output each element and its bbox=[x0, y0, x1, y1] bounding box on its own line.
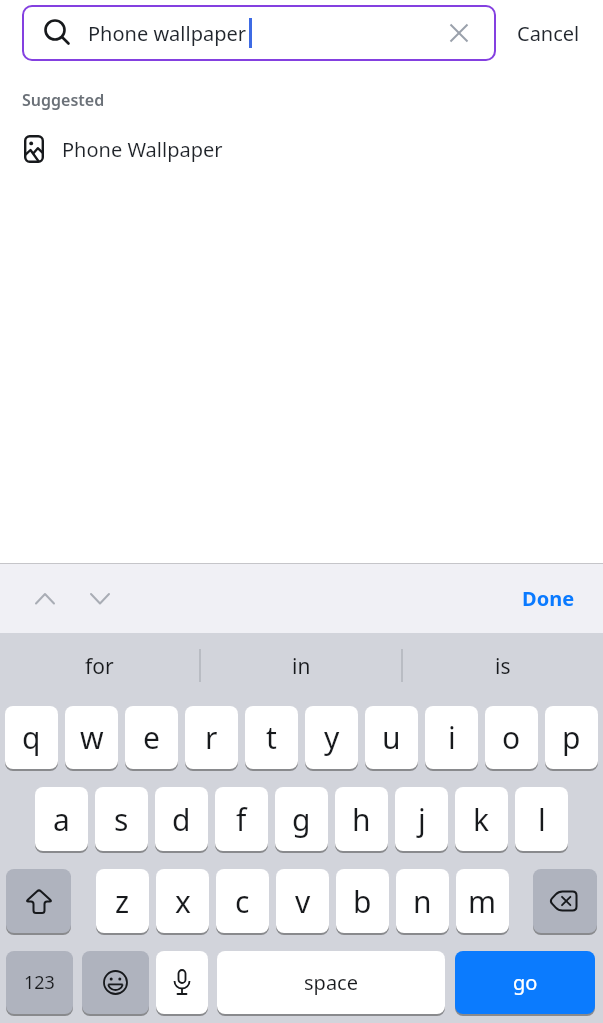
button[interactable]: u bbox=[365, 706, 418, 769]
staticText: Cancel bbox=[517, 20, 580, 47]
button[interactable]: k bbox=[455, 787, 508, 851]
button[interactable]: h bbox=[335, 787, 388, 851]
button[interactable]: in bbox=[201, 638, 401, 694]
staticText: x bbox=[175, 881, 191, 922]
staticText: f bbox=[236, 799, 247, 840]
button[interactable]: x bbox=[156, 869, 209, 933]
staticText: c bbox=[235, 881, 250, 922]
staticText: h bbox=[352, 799, 371, 840]
button[interactable]: Phone Wallpaper bbox=[24, 133, 603, 165]
staticText: in bbox=[292, 652, 311, 681]
button[interactable]: j bbox=[395, 787, 448, 851]
staticText: m bbox=[468, 881, 497, 922]
staticText: d bbox=[172, 799, 191, 840]
button[interactable]: Phone wallpaper bbox=[22, 5, 496, 61]
button[interactable]: Cancel bbox=[517, 20, 580, 47]
button[interactable] bbox=[34, 592, 56, 605]
button[interactable]: for bbox=[0, 638, 199, 694]
staticText: q bbox=[22, 717, 41, 758]
button[interactable]: b bbox=[336, 869, 389, 933]
button[interactable]: 123 bbox=[6, 951, 73, 1014]
staticText: Phone wallpaper bbox=[88, 20, 247, 47]
staticText: t bbox=[266, 717, 277, 758]
staticText: Suggested bbox=[22, 89, 105, 111]
staticText: e bbox=[143, 717, 160, 758]
button[interactable]: m bbox=[456, 869, 509, 933]
staticText: p bbox=[562, 717, 581, 758]
staticText: 123 bbox=[24, 970, 55, 995]
button[interactable] bbox=[533, 869, 597, 933]
staticText: j bbox=[418, 799, 426, 840]
staticText: space bbox=[304, 969, 358, 996]
staticText: b bbox=[353, 881, 372, 922]
staticText: v bbox=[295, 881, 311, 922]
staticText: r bbox=[205, 717, 218, 758]
staticText: Done bbox=[522, 585, 575, 612]
button[interactable]: i bbox=[425, 706, 478, 769]
button[interactable]: c bbox=[216, 869, 269, 933]
button[interactable]: go bbox=[455, 951, 595, 1014]
staticText: Phone Wallpaper bbox=[62, 136, 223, 163]
staticText: go bbox=[513, 969, 538, 996]
staticText: i bbox=[448, 717, 456, 758]
button[interactable]: is bbox=[403, 638, 603, 694]
button[interactable] bbox=[6, 869, 71, 933]
button[interactable]: space bbox=[217, 951, 445, 1014]
button[interactable]: s bbox=[95, 787, 148, 851]
staticText: g bbox=[292, 799, 311, 840]
staticText: w bbox=[80, 717, 104, 758]
button[interactable]: n bbox=[396, 869, 449, 933]
staticText: u bbox=[382, 717, 401, 758]
button[interactable]: f bbox=[215, 787, 268, 851]
button[interactable]: r bbox=[185, 706, 238, 769]
staticText: for bbox=[85, 652, 114, 681]
button[interactable]: o bbox=[485, 706, 538, 769]
staticText: z bbox=[115, 881, 130, 922]
staticText: y bbox=[324, 717, 340, 758]
staticText: l bbox=[538, 799, 546, 840]
button[interactable]: p bbox=[545, 706, 598, 769]
button[interactable] bbox=[82, 951, 149, 1014]
button[interactable]: g bbox=[275, 787, 328, 851]
staticText: k bbox=[473, 799, 490, 840]
button[interactable]: z bbox=[96, 869, 149, 933]
button[interactable]: y bbox=[305, 706, 358, 769]
button[interactable]: a bbox=[35, 787, 88, 851]
button[interactable]: q bbox=[5, 706, 58, 769]
button[interactable] bbox=[156, 951, 208, 1014]
button[interactable]: t bbox=[245, 706, 298, 769]
staticText: n bbox=[413, 881, 432, 922]
button[interactable]: v bbox=[276, 869, 329, 933]
button[interactable]: w bbox=[65, 706, 118, 769]
button[interactable]: d bbox=[155, 787, 208, 851]
button[interactable]: e bbox=[125, 706, 178, 769]
button[interactable] bbox=[448, 22, 470, 44]
staticText: o bbox=[502, 717, 521, 758]
staticText: is bbox=[495, 652, 511, 681]
button[interactable]: Done bbox=[522, 585, 603, 612]
button[interactable] bbox=[89, 592, 111, 605]
staticText: s bbox=[114, 799, 129, 840]
staticText: a bbox=[53, 799, 70, 840]
button[interactable]: l bbox=[515, 787, 568, 851]
